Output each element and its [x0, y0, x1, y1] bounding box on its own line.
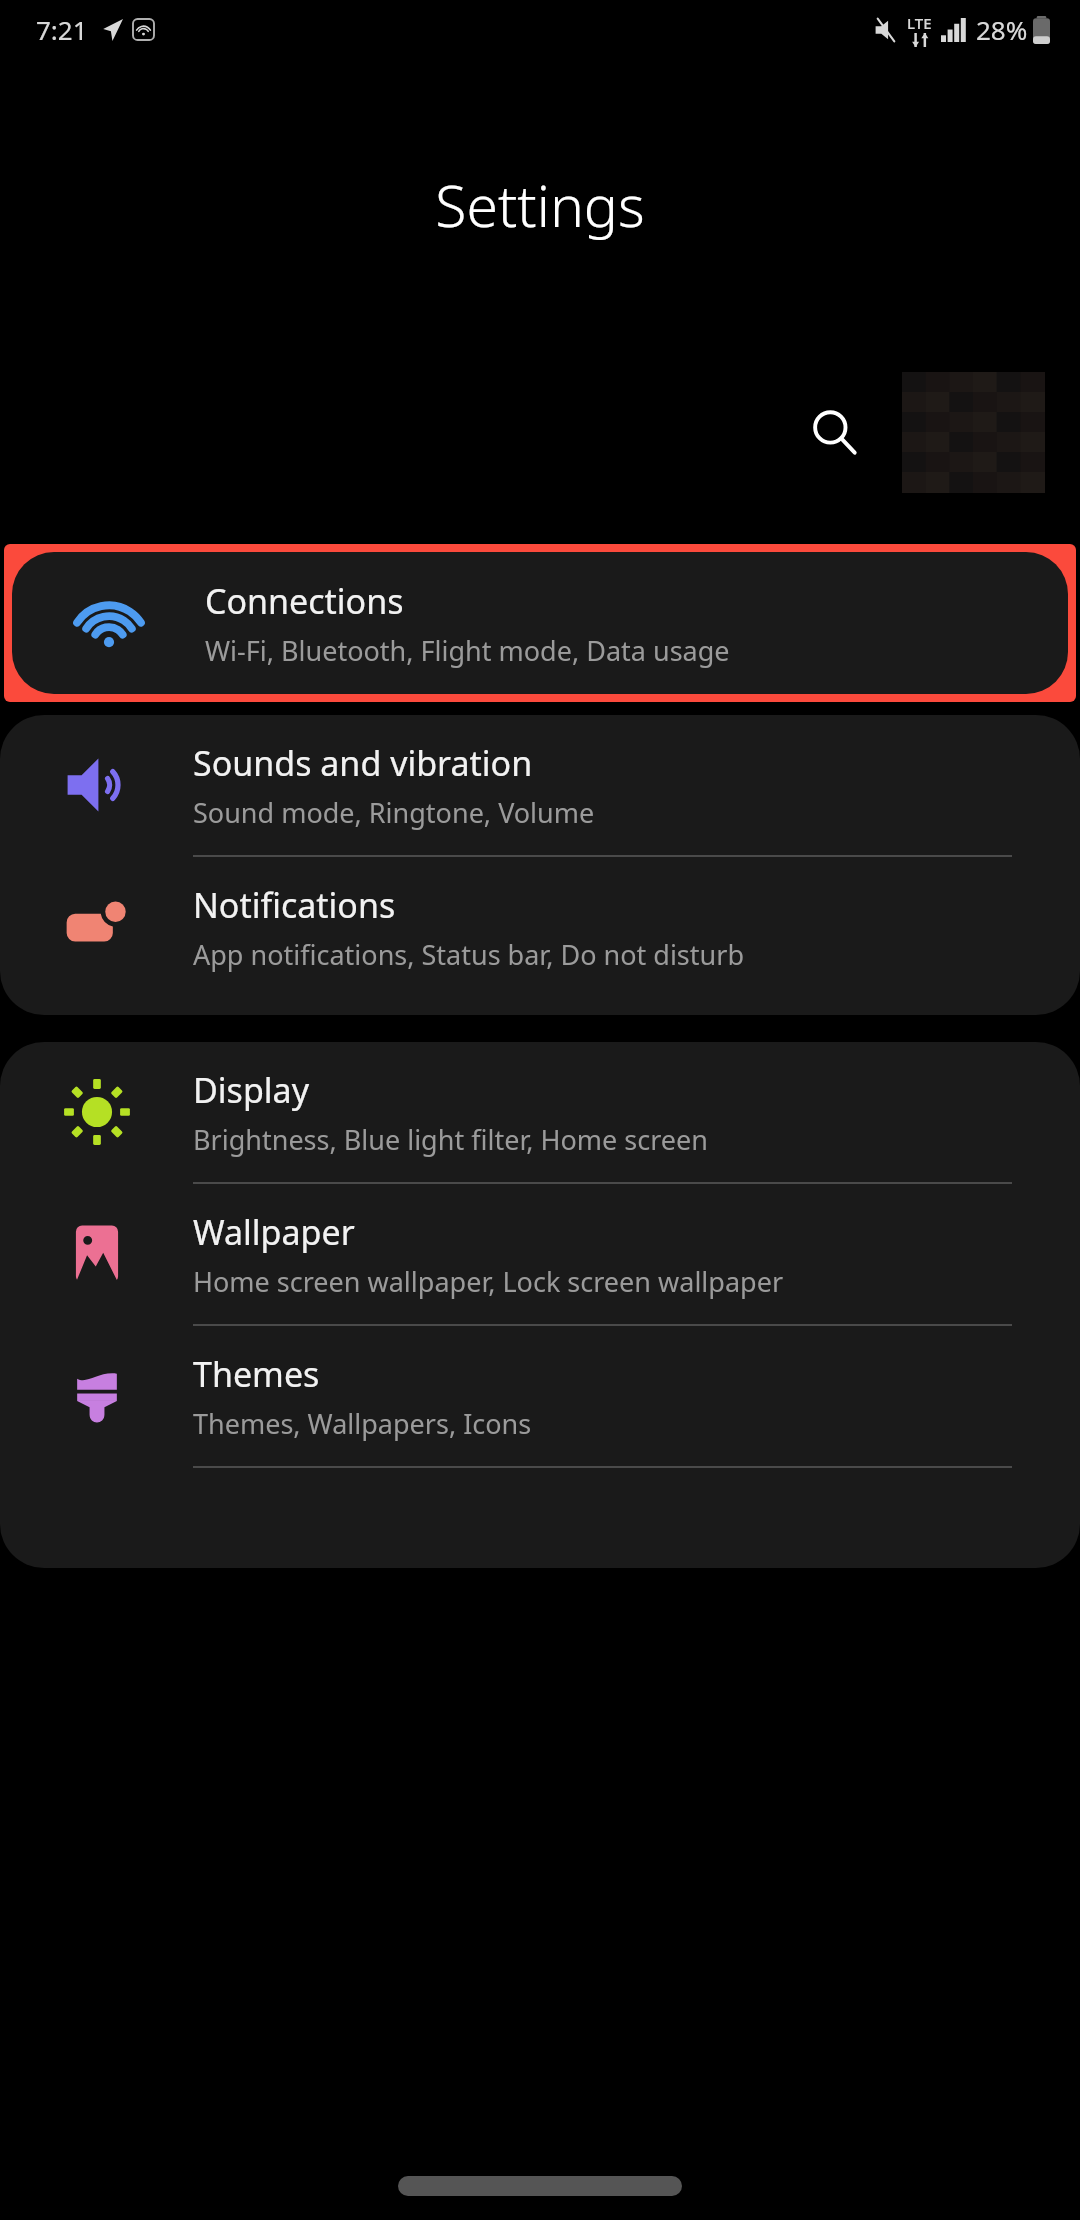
button[interactable]: Sounds and vibration — [0, 715, 1080, 855]
staticText: 7:21 — [36, 12, 88, 47]
button[interactable]: Themes — [0, 1326, 1080, 1466]
staticText: Settings — [0, 166, 1080, 244]
button[interactable]: Notifications — [0, 857, 1080, 997]
staticText: Notifications — [193, 882, 396, 928]
staticText: Wallpaper — [193, 1209, 355, 1255]
staticText: Home screen wallpaper, Lock screen wallp… — [193, 1263, 784, 1300]
staticText: Display — [193, 1067, 309, 1113]
staticText: LTE — [907, 13, 932, 33]
button[interactable]: Connections — [12, 552, 1068, 694]
staticText: 28% — [976, 12, 1028, 47]
staticText: Connections — [205, 578, 404, 624]
button[interactable]: Display — [0, 1042, 1080, 1182]
button[interactable]: Wallpaper — [0, 1184, 1080, 1324]
staticText: Sound mode, Ringtone, Volume — [193, 794, 595, 831]
staticText: Themes, Wallpapers, Icons — [193, 1405, 532, 1442]
button[interactable]: Search — [790, 388, 878, 476]
staticText: Themes — [193, 1351, 320, 1397]
staticText: Brightness, Blue light filter, Home scre… — [193, 1121, 708, 1158]
staticText: Wi-Fi, Bluetooth, Flight mode, Data usag… — [205, 632, 730, 669]
button[interactable]: Account — [902, 372, 1044, 492]
staticText: Sounds and vibration — [193, 740, 533, 786]
staticText: App notifications, Status bar, Do not di… — [193, 936, 744, 973]
